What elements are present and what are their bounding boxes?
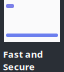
staticText: Fast and Secure [3, 48, 43, 72]
